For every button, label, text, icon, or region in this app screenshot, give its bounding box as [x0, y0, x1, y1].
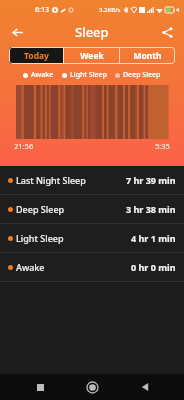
- staticText: Today: [24, 50, 49, 62]
- staticText: Light Sleep: [70, 70, 107, 80]
- button[interactable]: Week: [64, 47, 119, 64]
- staticText: 4: [176, 6, 180, 14]
- staticText: Light Sleep: [16, 232, 64, 244]
- staticText: 21:56: [14, 141, 34, 151]
- button[interactable]: Home: [79, 374, 105, 400]
- staticText: Last Night Sleep: [16, 174, 86, 186]
- button[interactable]: Month: [120, 47, 175, 64]
- staticText: 3.2KB/s: [99, 6, 121, 14]
- staticText: 3 hr 38 min: [126, 203, 176, 215]
- staticText: Month: [133, 50, 162, 62]
- staticText: Sleep: [75, 23, 109, 41]
- staticText: 5:35: [155, 141, 170, 151]
- staticText: Awake: [16, 261, 45, 273]
- button[interactable]: Deep Sleep: [0, 195, 184, 223]
- staticText: Awake: [31, 70, 54, 80]
- button[interactable]: Back: [132, 374, 158, 400]
- staticText: Deep Sleep: [16, 203, 65, 215]
- staticText: 7 hr 39 min: [126, 174, 176, 186]
- staticText: 6:13: [35, 5, 49, 15]
- button[interactable]: Share: [156, 21, 178, 43]
- staticText: 4 hr 1 min: [131, 232, 176, 244]
- staticText: Deep Sleep: [123, 70, 161, 80]
- button[interactable]: Today: [9, 47, 63, 64]
- staticText: 0 hr 0 min: [131, 261, 176, 273]
- button[interactable]: Recent apps: [27, 374, 53, 400]
- button[interactable]: Awake: [0, 253, 184, 281]
- button[interactable]: Last Night Sleep: [0, 166, 184, 194]
- staticText: Week: [80, 50, 104, 62]
- button[interactable]: Light Sleep: [0, 224, 184, 252]
- button[interactable]: Back: [6, 21, 28, 43]
